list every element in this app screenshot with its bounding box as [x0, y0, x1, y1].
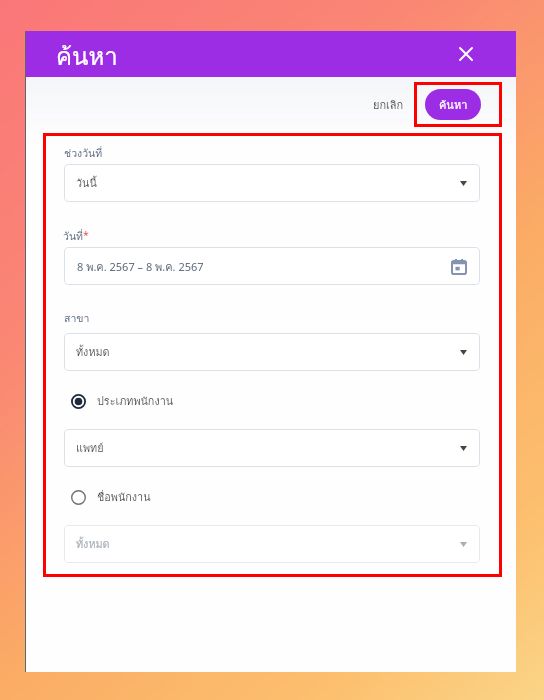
button[interactable]: ทั้งหมด	[64, 333, 480, 371]
staticText: 8 พ.ค. 2567 – 8 พ.ค. 2567	[77, 258, 204, 275]
button[interactable]: 8 พ.ค. 2567 – 8 พ.ค. 2567	[64, 247, 480, 285]
button[interactable]: Close	[451, 39, 481, 69]
button[interactable]: ชื่อพนักงาน	[71, 484, 151, 510]
button[interactable]: ประเภทพนักงาน	[71, 388, 174, 414]
staticText: ชื่อพนักงาน	[97, 489, 151, 506]
button[interactable]: ทั้งหมด	[64, 525, 480, 563]
staticText: วันที่	[63, 228, 83, 245]
staticText: ทั้งหมด	[76, 344, 110, 361]
button[interactable]: ค้นหา	[425, 89, 481, 120]
staticText: วันนี้	[76, 175, 97, 192]
staticText: ช่วงวันที่	[64, 145, 103, 162]
staticText: *	[83, 228, 89, 242]
staticText: ประเภทพนักงาน	[97, 393, 174, 410]
staticText: แพทย์	[76, 440, 104, 457]
staticText: ยกเลิก	[373, 96, 404, 113]
staticText: ทั้งหมด	[76, 536, 110, 553]
button[interactable]: ยกเลิก	[365, 89, 411, 120]
button[interactable]: แพทย์	[64, 429, 480, 467]
button[interactable]: วันนี้	[64, 164, 480, 202]
staticText: ค้นหา	[56, 37, 118, 75]
staticText: ค้นหา	[439, 96, 468, 113]
staticText: สาขา	[64, 310, 90, 327]
